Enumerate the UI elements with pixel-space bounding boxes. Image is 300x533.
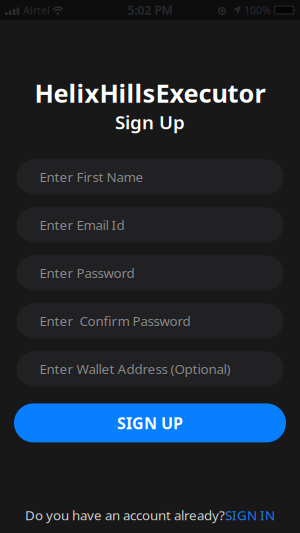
staticText: Do you have an account already? [25, 506, 225, 524]
staticText: Sign Up [115, 110, 185, 134]
button[interactable]: Enter Password [16, 255, 283, 290]
staticText: 5:02 PM [127, 2, 172, 18]
staticText: SIGN UP [117, 412, 183, 433]
staticText: SIGN IN [225, 506, 275, 524]
button[interactable]: Enter Confirm Password [16, 303, 283, 338]
button[interactable]: Enter Wallet Address (Optional) [16, 351, 283, 386]
staticText: Enter First Name [39, 168, 143, 186]
button[interactable]: Enter First Name [16, 159, 283, 194]
button[interactable]: Enter Email Id [16, 207, 283, 242]
staticText: Enter Wallet Address (Optional) [39, 360, 230, 378]
staticText: Airtel [23, 3, 50, 17]
staticText: Enter Confirm Password [39, 312, 190, 330]
staticText: Enter Email Id [39, 216, 124, 234]
staticText: 100% [244, 3, 271, 17]
staticText: HelixHillsExecutor [34, 76, 265, 110]
button[interactable]: SIGN UP [14, 403, 286, 442]
staticText: Enter Password [39, 264, 134, 282]
button[interactable]: SIGN IN [225, 506, 275, 524]
